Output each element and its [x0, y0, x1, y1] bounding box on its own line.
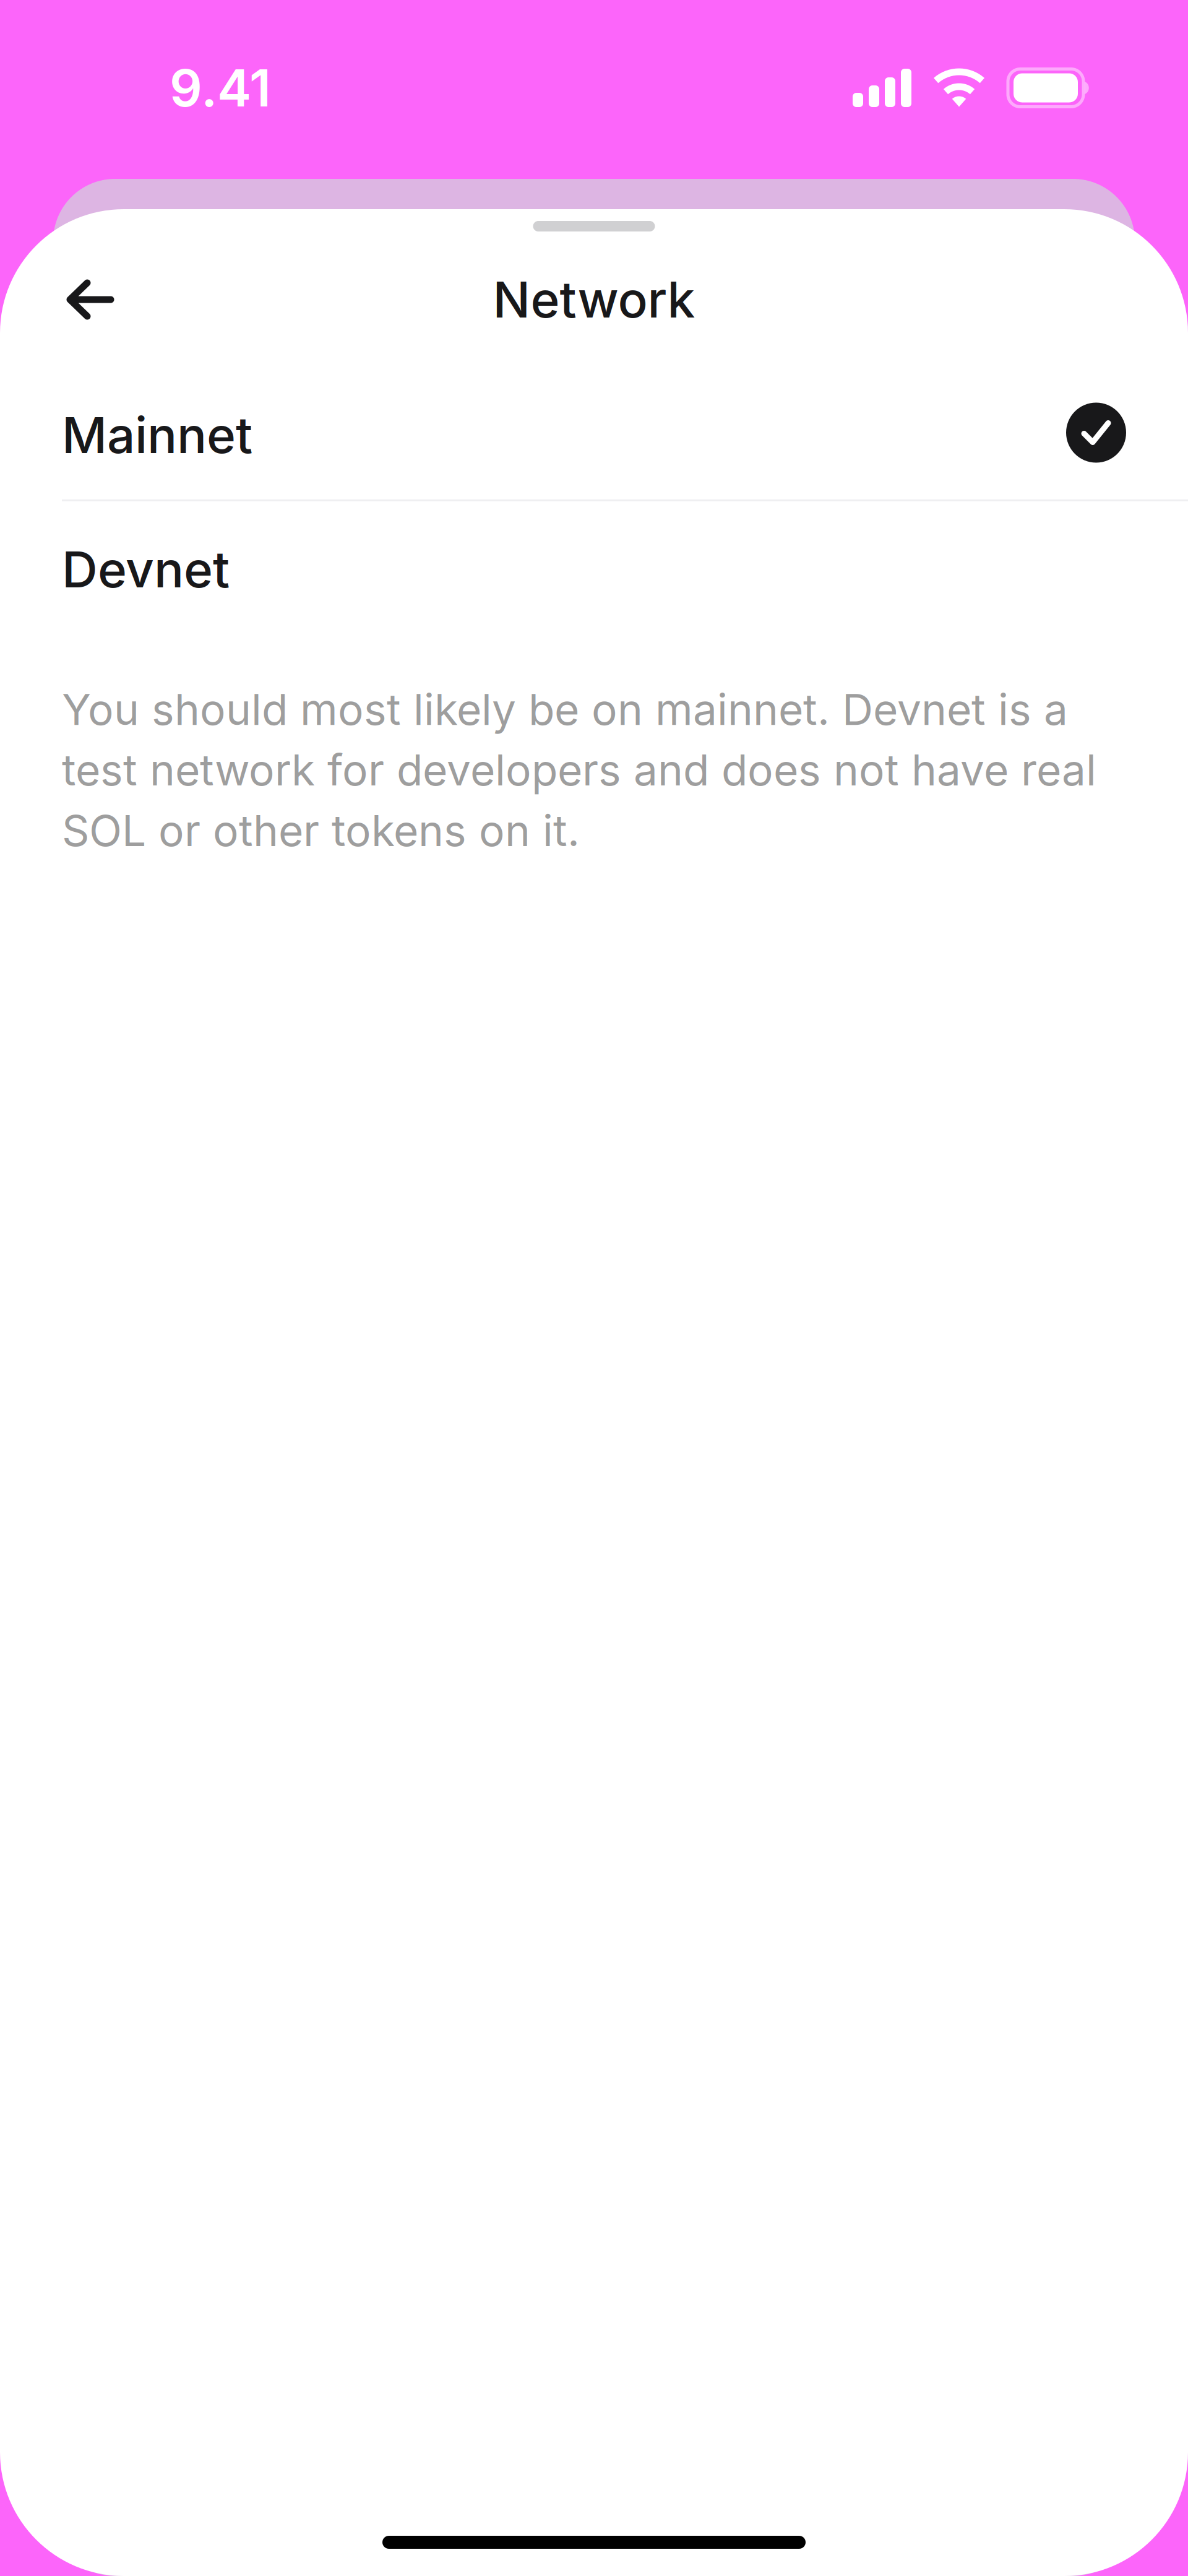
- staticText: Mainnet: [62, 405, 252, 465]
- staticText: Devnet: [62, 539, 230, 599]
- staticText: Network: [493, 270, 695, 330]
- staticText: You should most likely be on mainnet. De…: [62, 683, 1096, 856]
- button[interactable]: Back: [0, 260, 135, 339]
- button[interactable]: Mainnet: [0, 400, 1188, 470]
- staticText: 9.41: [170, 57, 271, 119]
- button[interactable]: Devnet: [0, 535, 1188, 604]
